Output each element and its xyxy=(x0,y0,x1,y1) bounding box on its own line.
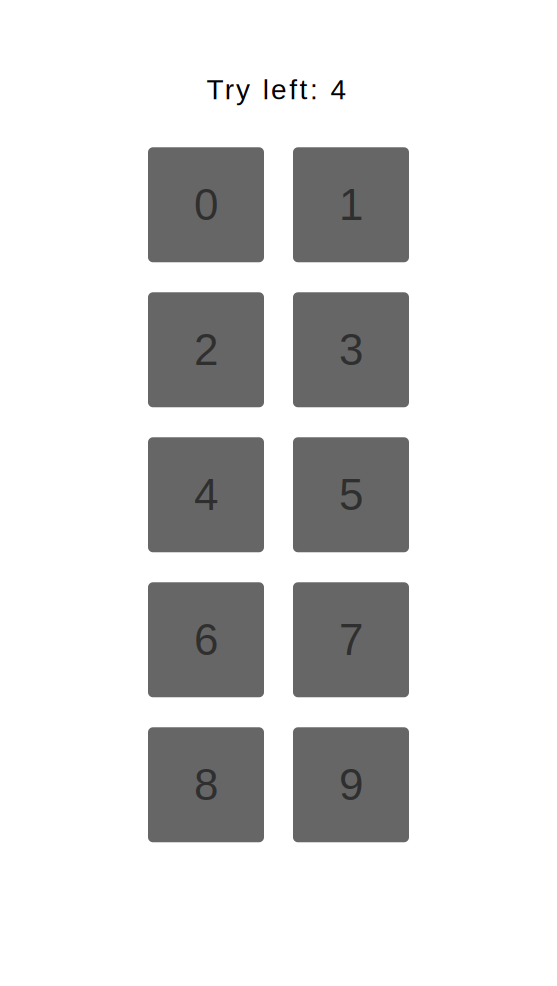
staticText: 1 xyxy=(339,180,363,229)
button[interactable]: 4 xyxy=(148,437,264,552)
staticText: 4 xyxy=(194,470,218,519)
staticText: 6 xyxy=(194,615,218,664)
staticText: Try left: 4 xyxy=(206,74,346,105)
button[interactable]: 0 xyxy=(148,147,264,262)
button[interactable]: 8 xyxy=(148,727,264,842)
button[interactable]: 6 xyxy=(148,582,264,697)
staticText: 0 xyxy=(194,180,218,229)
button[interactable]: 2 xyxy=(148,292,264,407)
button[interactable]: 5 xyxy=(293,437,409,552)
staticText: 5 xyxy=(339,470,363,519)
staticText: 8 xyxy=(194,760,218,809)
button[interactable]: 9 xyxy=(293,727,409,842)
staticText: 9 xyxy=(339,760,363,809)
staticText: 7 xyxy=(339,615,363,664)
staticText: 3 xyxy=(339,325,363,374)
button[interactable]: 7 xyxy=(293,582,409,697)
button[interactable]: 1 xyxy=(293,147,409,262)
button[interactable]: 3 xyxy=(293,292,409,407)
staticText: 2 xyxy=(194,325,218,374)
